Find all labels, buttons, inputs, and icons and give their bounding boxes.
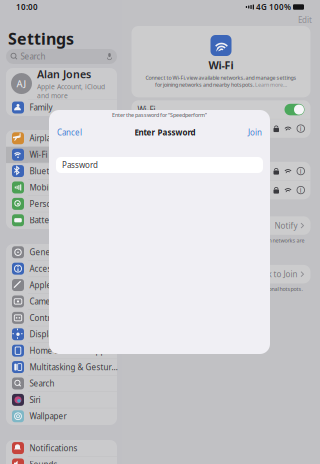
staticText: Ask to Join [258, 269, 297, 279]
staticText: i [300, 167, 302, 176]
button[interactable]: Password [56, 157, 263, 173]
staticText: Siri [29, 394, 40, 405]
button[interactable]: Family [6, 99, 117, 116]
staticText: Connect to Wi-Fi, view available network… [145, 74, 296, 81]
staticText: Cancel [57, 127, 82, 138]
button[interactable]: Airplane Mode [6, 130, 117, 147]
staticText: Camera [29, 296, 57, 307]
button[interactable]: Cancel [53, 126, 86, 139]
button[interactable]: Display & Brightness [6, 326, 117, 343]
button[interactable]: Siri [6, 392, 117, 408]
staticText: Alan Jones [37, 67, 91, 81]
staticText: 100% [269, 2, 291, 12]
button[interactable]: Edit [294, 15, 316, 25]
staticText: Bluetooth [29, 166, 67, 176]
staticText: and more [37, 91, 68, 100]
button[interactable]: Sounds [6, 456, 117, 464]
staticText: Wi-Fi [29, 149, 47, 160]
staticText: Learn more… [254, 81, 287, 88]
staticText: Control Centre [29, 312, 85, 323]
staticText: Mobile Service [29, 182, 84, 193]
staticText: Airplane Mode [29, 133, 84, 143]
button[interactable]: Search [6, 375, 117, 392]
button[interactable]: Home Screen & App Library [6, 343, 117, 359]
staticText: Display & Brightness [29, 329, 107, 339]
staticText: for joining networks and nearby hotspots… [155, 81, 254, 88]
button[interactable]: Speedperform [131, 119, 310, 138]
button[interactable]: Battery [6, 212, 117, 229]
button[interactable]: Wi-Fi [6, 147, 117, 163]
button[interactable]: Auto-Join Hotspot [131, 265, 310, 283]
staticText: Search [29, 378, 54, 389]
button[interactable]: Bluetooth [6, 163, 117, 179]
staticText: Apple Intelligence & Siri [29, 280, 117, 290]
button[interactable]: Ask to Join Networks [131, 216, 310, 235]
staticText: HomeNet-5G [137, 166, 188, 176]
staticText: Speedperform [137, 123, 192, 134]
staticText: Wallpaper [29, 411, 66, 421]
staticText: Home Screen & App Library [29, 345, 117, 356]
button[interactable]: Notifications [6, 440, 117, 456]
staticText: Settings [8, 28, 74, 49]
staticText: Notifications [29, 443, 77, 453]
staticText: Password [62, 160, 98, 170]
button[interactable]: Wallpaper [6, 408, 117, 425]
staticText: Apple Account, iCloud [37, 82, 105, 91]
button[interactable]: Home-Guest [131, 181, 310, 199]
button[interactable]: Join [244, 126, 266, 139]
staticText: General [29, 247, 59, 257]
staticText: Join [248, 127, 262, 138]
button[interactable]: Personal Hotspot [6, 196, 117, 212]
staticText: Personal Hotspot [29, 198, 95, 209]
staticText: Notify [274, 220, 297, 231]
staticText: Known networks will be joined automatica… [137, 237, 304, 244]
staticText: Wi-Fi [208, 58, 233, 72]
staticText: 10:00 [16, 2, 38, 12]
button[interactable]: Control Centre [6, 310, 117, 326]
button[interactable]: Multitasking & Gestures [6, 359, 117, 375]
staticText: Wi-Fi [137, 104, 155, 115]
button[interactable]: Wi-Fi [284, 104, 304, 115]
staticText: Family [29, 102, 52, 113]
staticText: i [300, 124, 302, 133]
staticText: Accessibility [29, 263, 75, 274]
button[interactable]: Accessibility [6, 261, 117, 277]
staticText: Search [20, 51, 45, 62]
button[interactable]: Mobile Service [6, 179, 117, 196]
staticText: Edit [298, 15, 312, 25]
staticText: Enter the password for “Speedperform” [112, 111, 207, 119]
button[interactable]: HomeNet-5G [131, 162, 310, 180]
staticText: Allow this device to automatically disco… [137, 285, 302, 292]
button[interactable]: Camera [6, 293, 117, 310]
button[interactable]: AJ [6, 68, 117, 99]
staticText: i [300, 186, 302, 195]
button[interactable]: Search [6, 49, 117, 64]
staticText: Battery [29, 215, 56, 225]
staticText: Sounds [29, 459, 57, 464]
staticText: 4G [256, 2, 267, 12]
staticText: Multitasking & Gestures [29, 362, 117, 372]
staticText: AJ [16, 77, 26, 90]
staticText: Enter Password [134, 127, 195, 138]
button[interactable]: Apple Intelligence & Siri [6, 277, 117, 293]
button[interactable]: General [6, 244, 117, 261]
